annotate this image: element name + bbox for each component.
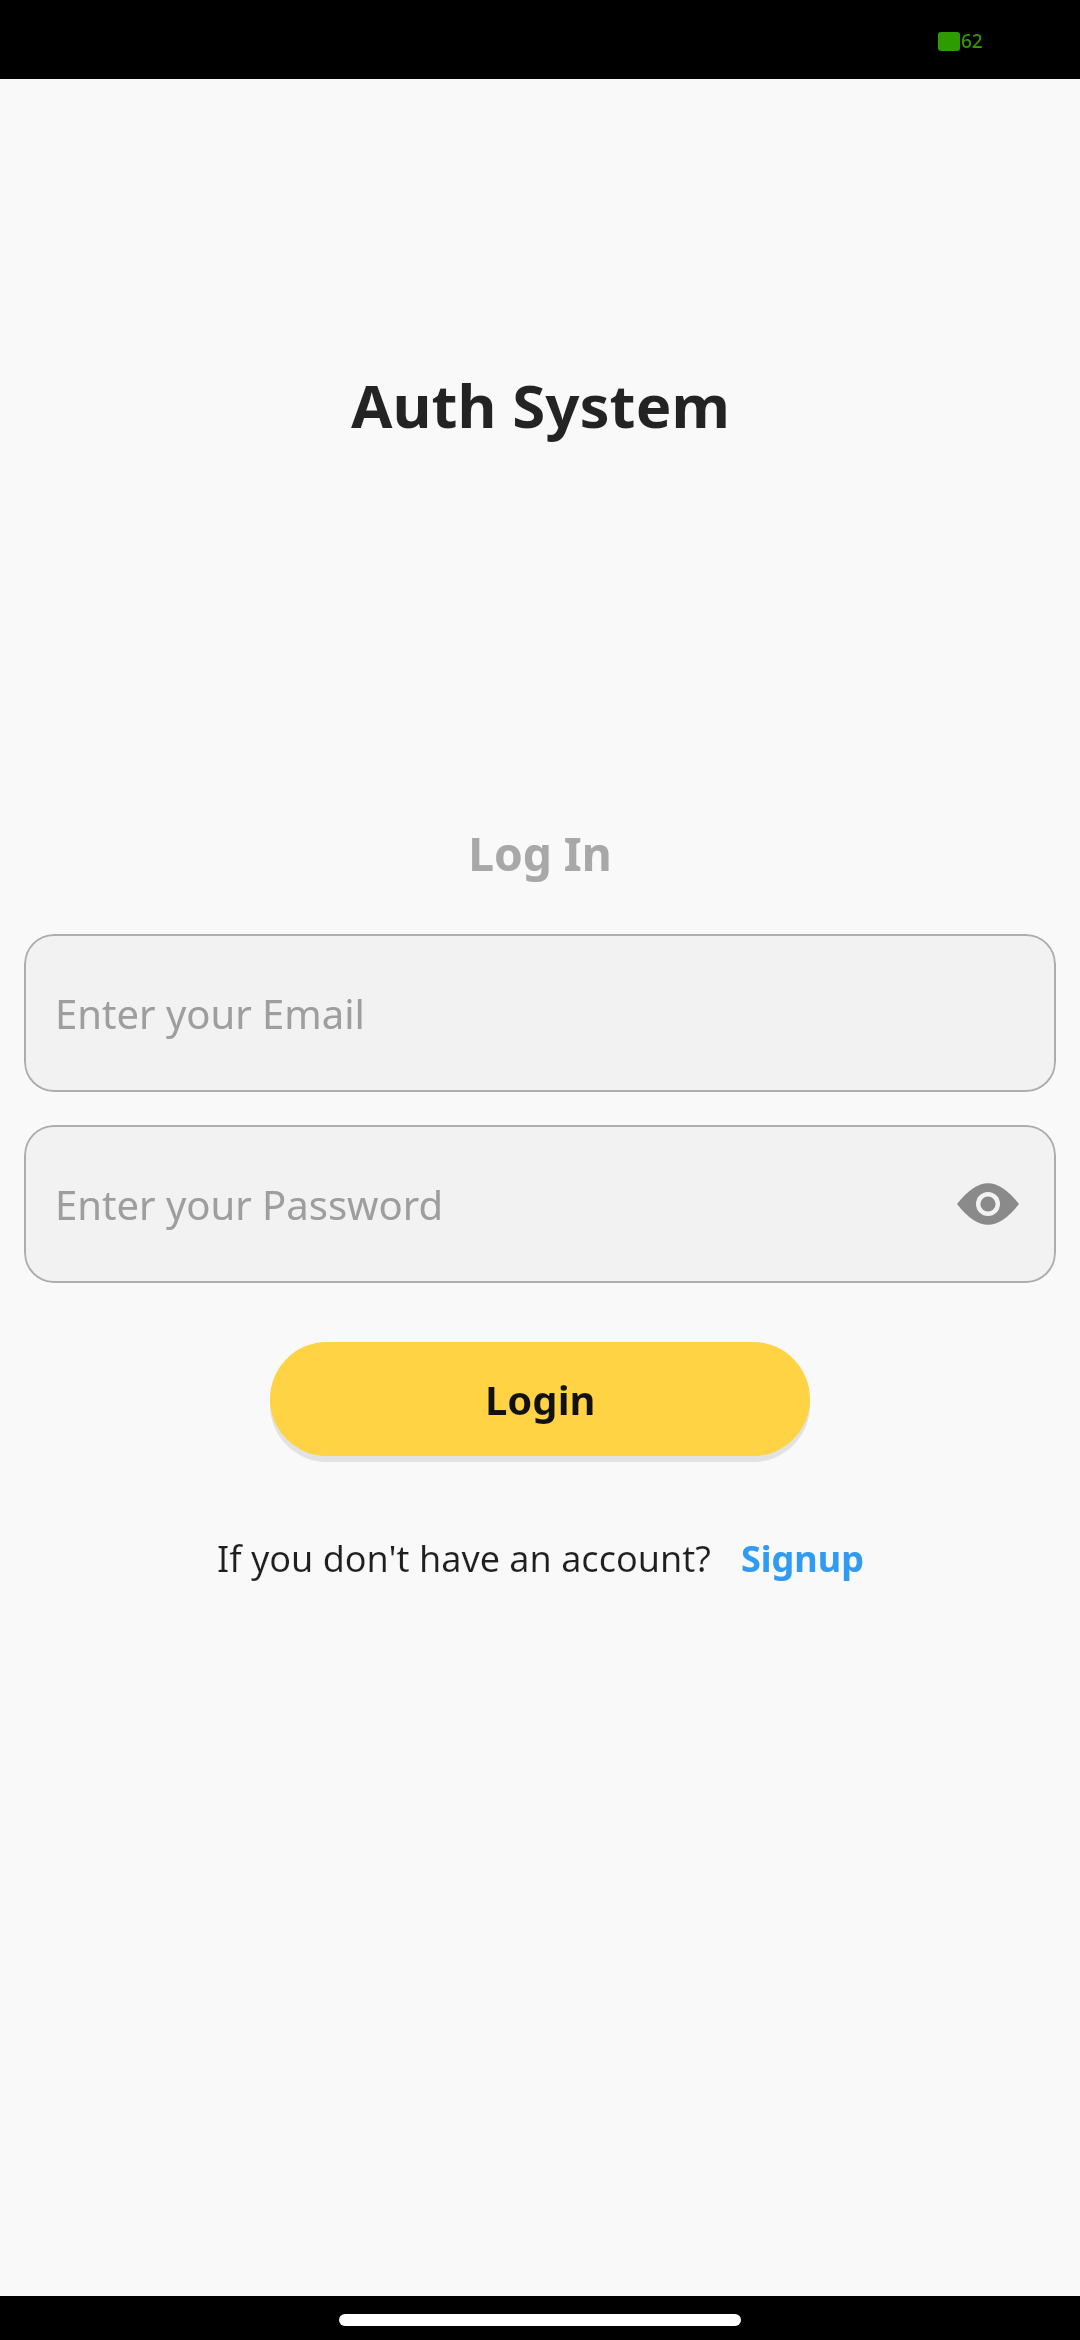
staticText: 62 [961, 28, 983, 54]
button[interactable]: Login [270, 1342, 810, 1456]
staticText: Signup [741, 1534, 864, 1583]
staticText: Login [485, 1372, 596, 1426]
staticText: If you don't have an account? [217, 1534, 711, 1583]
button[interactable]: Enter your Email [24, 934, 1056, 1092]
button[interactable]: Enter your Password [24, 1125, 1056, 1283]
staticText: Log In [468, 822, 612, 885]
staticText: Enter your Password [55, 1177, 444, 1231]
button[interactable]: Show password [952, 1168, 1024, 1240]
staticText: Auth System [351, 364, 730, 446]
staticText: Enter your Email [55, 986, 365, 1040]
button[interactable]: Signup [741, 1534, 864, 1583]
